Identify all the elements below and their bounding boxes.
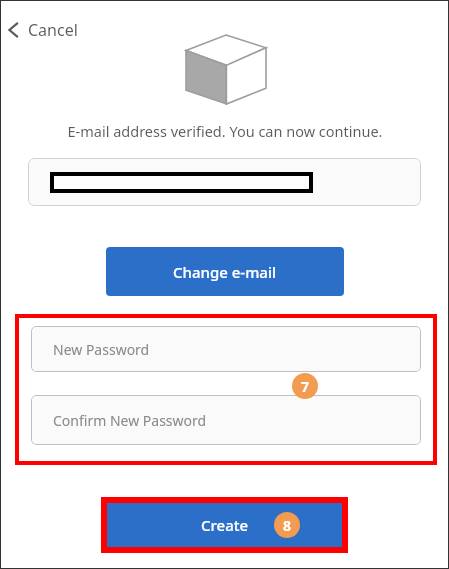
button[interactable]: Confirm New Password: [31, 395, 421, 445]
staticText: Change e-mail: [173, 262, 277, 282]
button[interactable]: Change e-mail: [106, 247, 344, 296]
staticText: New Password: [53, 340, 150, 359]
staticText: 8: [283, 516, 292, 535]
button[interactable]: Back: [4, 16, 82, 44]
staticText: Confirm New Password: [53, 411, 207, 430]
staticText: 7: [301, 377, 310, 396]
other: Back: [8, 22, 20, 38]
staticText: Cancel: [28, 19, 78, 41]
button[interactable]: [28, 158, 421, 206]
button[interactable]: Create: [107, 503, 342, 547]
staticText: E-mail address verified. You can now con…: [67, 121, 383, 141]
staticText: Create: [201, 515, 249, 535]
button[interactable]: New Password: [31, 326, 421, 372]
